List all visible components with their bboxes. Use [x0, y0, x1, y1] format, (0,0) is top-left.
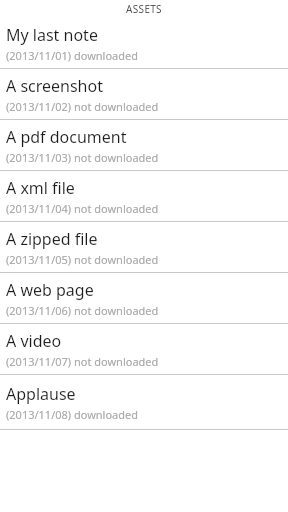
button[interactable]: My last note	[0, 18, 288, 69]
staticText: A pdf document	[6, 126, 127, 148]
staticText: (2013/11/04) not downloaded	[6, 201, 159, 216]
button[interactable]: A screenshot	[0, 69, 288, 120]
staticText: A screenshot	[6, 75, 103, 97]
button[interactable]: Applause	[0, 375, 288, 430]
button[interactable]: A web page	[0, 273, 288, 324]
staticText: (2013/11/05) not downloaded	[6, 252, 159, 267]
staticText: (2013/11/06) not downloaded	[6, 303, 159, 318]
staticText: (2013/11/08) downloaded	[6, 407, 139, 422]
staticText: A video	[6, 330, 62, 352]
staticText: A web page	[6, 279, 94, 301]
staticText: (2013/11/01) downloaded	[6, 48, 139, 63]
button[interactable]: A xml file	[0, 171, 288, 222]
staticText: ASSETS	[126, 2, 162, 16]
staticText: A xml file	[6, 177, 75, 199]
staticText: My last note	[6, 24, 98, 46]
button[interactable]: A pdf document	[0, 120, 288, 171]
staticText: A zipped file	[6, 228, 98, 250]
staticText: Applause	[6, 383, 76, 405]
button[interactable]: A zipped file	[0, 222, 288, 273]
staticText: (2013/11/07) not downloaded	[6, 354, 159, 369]
staticText: (2013/11/03) not downloaded	[6, 150, 159, 165]
staticText: (2013/11/02) not downloaded	[6, 99, 159, 114]
button[interactable]: A video	[0, 324, 288, 375]
